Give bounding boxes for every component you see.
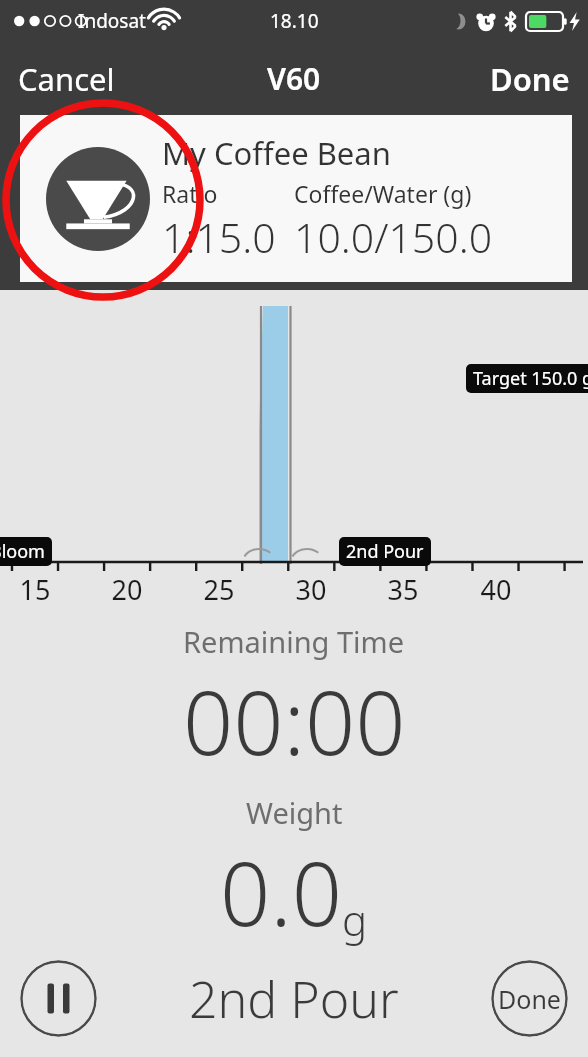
- staticText: 15: [13, 571, 57, 608]
- staticText: 35: [381, 571, 425, 608]
- staticText: 30: [289, 571, 333, 608]
- staticText: Coffee/Water (g): [294, 178, 472, 209]
- staticText: My Coffee Bean: [162, 132, 391, 174]
- staticText: 1:15.0: [162, 209, 276, 265]
- staticText: Remaining Time: [183, 622, 405, 661]
- staticText: g: [342, 891, 368, 948]
- staticText: Target 150.0 g: [473, 366, 588, 391]
- button[interactable]: Cancel: [0, 46, 133, 112]
- staticText: 25: [197, 571, 241, 608]
- staticText: 00:00: [183, 661, 406, 781]
- staticText: 40: [474, 571, 518, 608]
- button[interactable]: My Coffee Bean: [20, 115, 572, 282]
- staticText: Done: [490, 58, 570, 100]
- button[interactable]: Done: [491, 960, 568, 1037]
- button[interactable]: Done: [472, 46, 588, 112]
- staticText: Ratio: [162, 178, 218, 209]
- staticText: 10.0/150.0: [294, 209, 493, 265]
- staticText: Weight: [246, 793, 343, 832]
- staticText: 2nd Pour: [189, 965, 399, 1033]
- staticText: Done: [498, 982, 561, 1016]
- button[interactable]: Pause: [20, 960, 97, 1037]
- staticText: V60: [267, 58, 321, 99]
- staticText: Indosat: [78, 8, 146, 34]
- staticText: 2nd Pour: [346, 539, 424, 564]
- staticText: Cancel: [18, 58, 115, 100]
- staticText: 18.10: [270, 8, 319, 34]
- staticText: 0.0: [220, 832, 342, 952]
- staticText: 20: [105, 571, 149, 608]
- staticText: Bloom: [0, 539, 45, 564]
